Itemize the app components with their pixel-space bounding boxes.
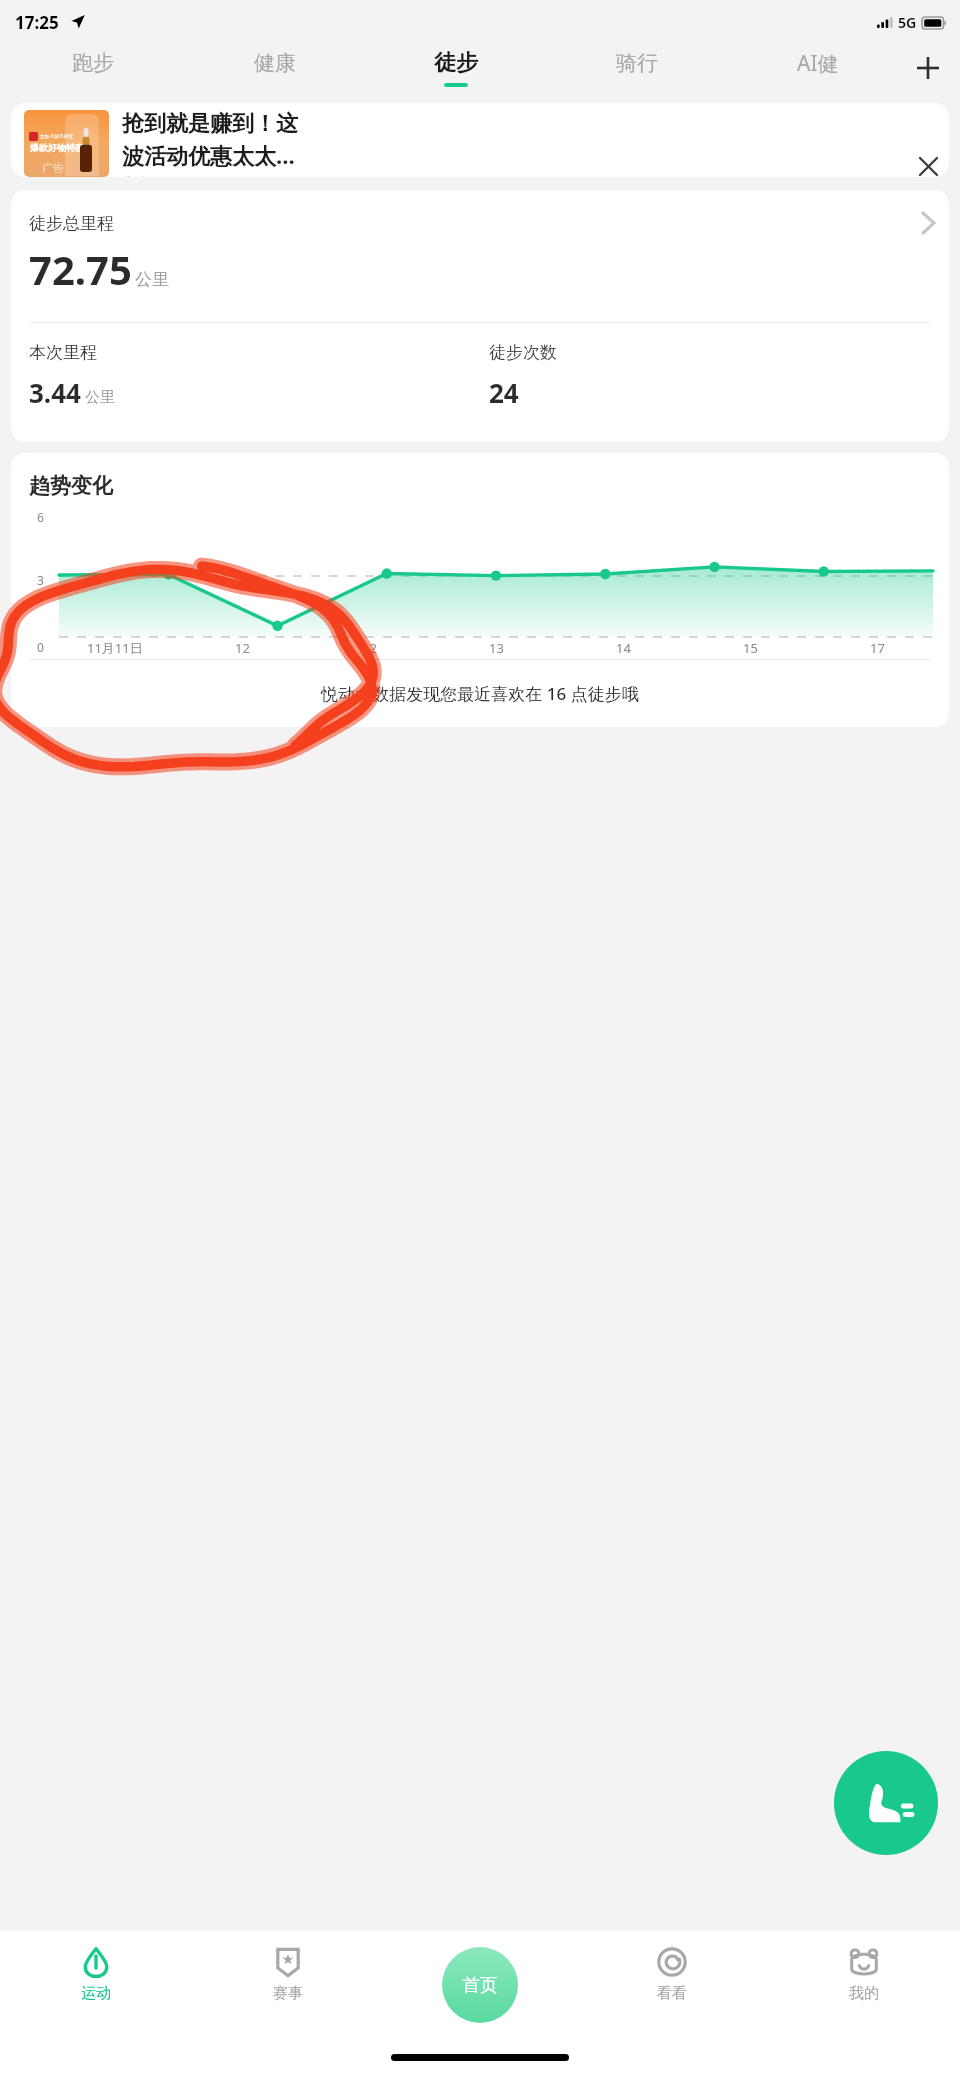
staticText: 12 [362,639,377,657]
button[interactable]: 京东·又好又便宜 [11,103,949,177]
staticText: 徒步次数 [489,342,557,363]
staticText: 悦动大数据发现您最近喜欢在 16 点徒步哦 [321,682,639,705]
staticText: 跑步 [72,50,114,76]
staticText: 波活动优惠太太… [122,140,295,170]
button[interactable]: 运动 [0,1945,192,2039]
staticText: 本次里程 [29,342,97,363]
staticText: 趋势变化 [29,473,113,499]
staticText: 赛事 [273,1984,303,2003]
staticText: 3.44 [29,375,81,410]
button[interactable]: Start hiking [834,1751,938,1855]
staticText: 运动 [81,1984,111,2003]
staticText: 徒步总里程 [29,213,114,234]
staticText: 17:25 [15,11,59,34]
button[interactable]: 本次里程 [29,342,489,410]
staticText: 13 [489,639,504,657]
staticText: 首页 [462,1974,498,1997]
staticText: 我的 [849,1984,879,2003]
staticText: 京东 [122,175,150,177]
staticText: 抢到就是赚到！这 [122,110,298,138]
staticText: 3 [37,572,44,588]
staticText: 看看 [657,1984,687,2003]
button[interactable]: 看看 [576,1945,768,2039]
staticText: 17 [870,639,885,657]
button[interactable]: Close ad [915,156,941,177]
button[interactable]: 徒步次数 [489,342,949,410]
staticText: 爆款好物特惠 [30,142,84,153]
staticText: AI健 [797,49,839,78]
staticText: 公里 [85,388,115,407]
staticText: 15 [743,639,758,657]
staticText: 徒步 [434,49,478,77]
staticText: 京东·又好又便宜 [40,133,73,139]
button[interactable]: 骑行 [546,42,727,94]
staticText: 6 [37,509,44,525]
button[interactable]: Add [906,46,950,90]
staticText: 72.75 [29,242,132,296]
staticText: 0 [37,639,44,655]
staticText: 广告 [42,161,64,175]
staticText: 12 [235,639,250,657]
button[interactable]: 我的 [768,1945,960,2039]
button[interactable]: 徒步总里程 [11,190,949,240]
staticText: 健康 [254,50,296,76]
staticText: 5G [898,13,917,32]
button[interactable]: 跑步 [2,42,184,94]
button[interactable]: 赛事 [192,1945,384,2039]
staticText: 14 [616,639,631,657]
staticText: 骑行 [616,50,658,76]
button[interactable]: AI健 [727,42,908,94]
button[interactable]: 徒步 [365,42,546,94]
button[interactable]: 首页 [442,1947,518,2023]
staticText: 公里 [135,269,169,290]
staticText: 24 [489,375,519,410]
button[interactable]: 健康 [184,42,365,94]
staticText: 11月11日 [87,639,143,657]
